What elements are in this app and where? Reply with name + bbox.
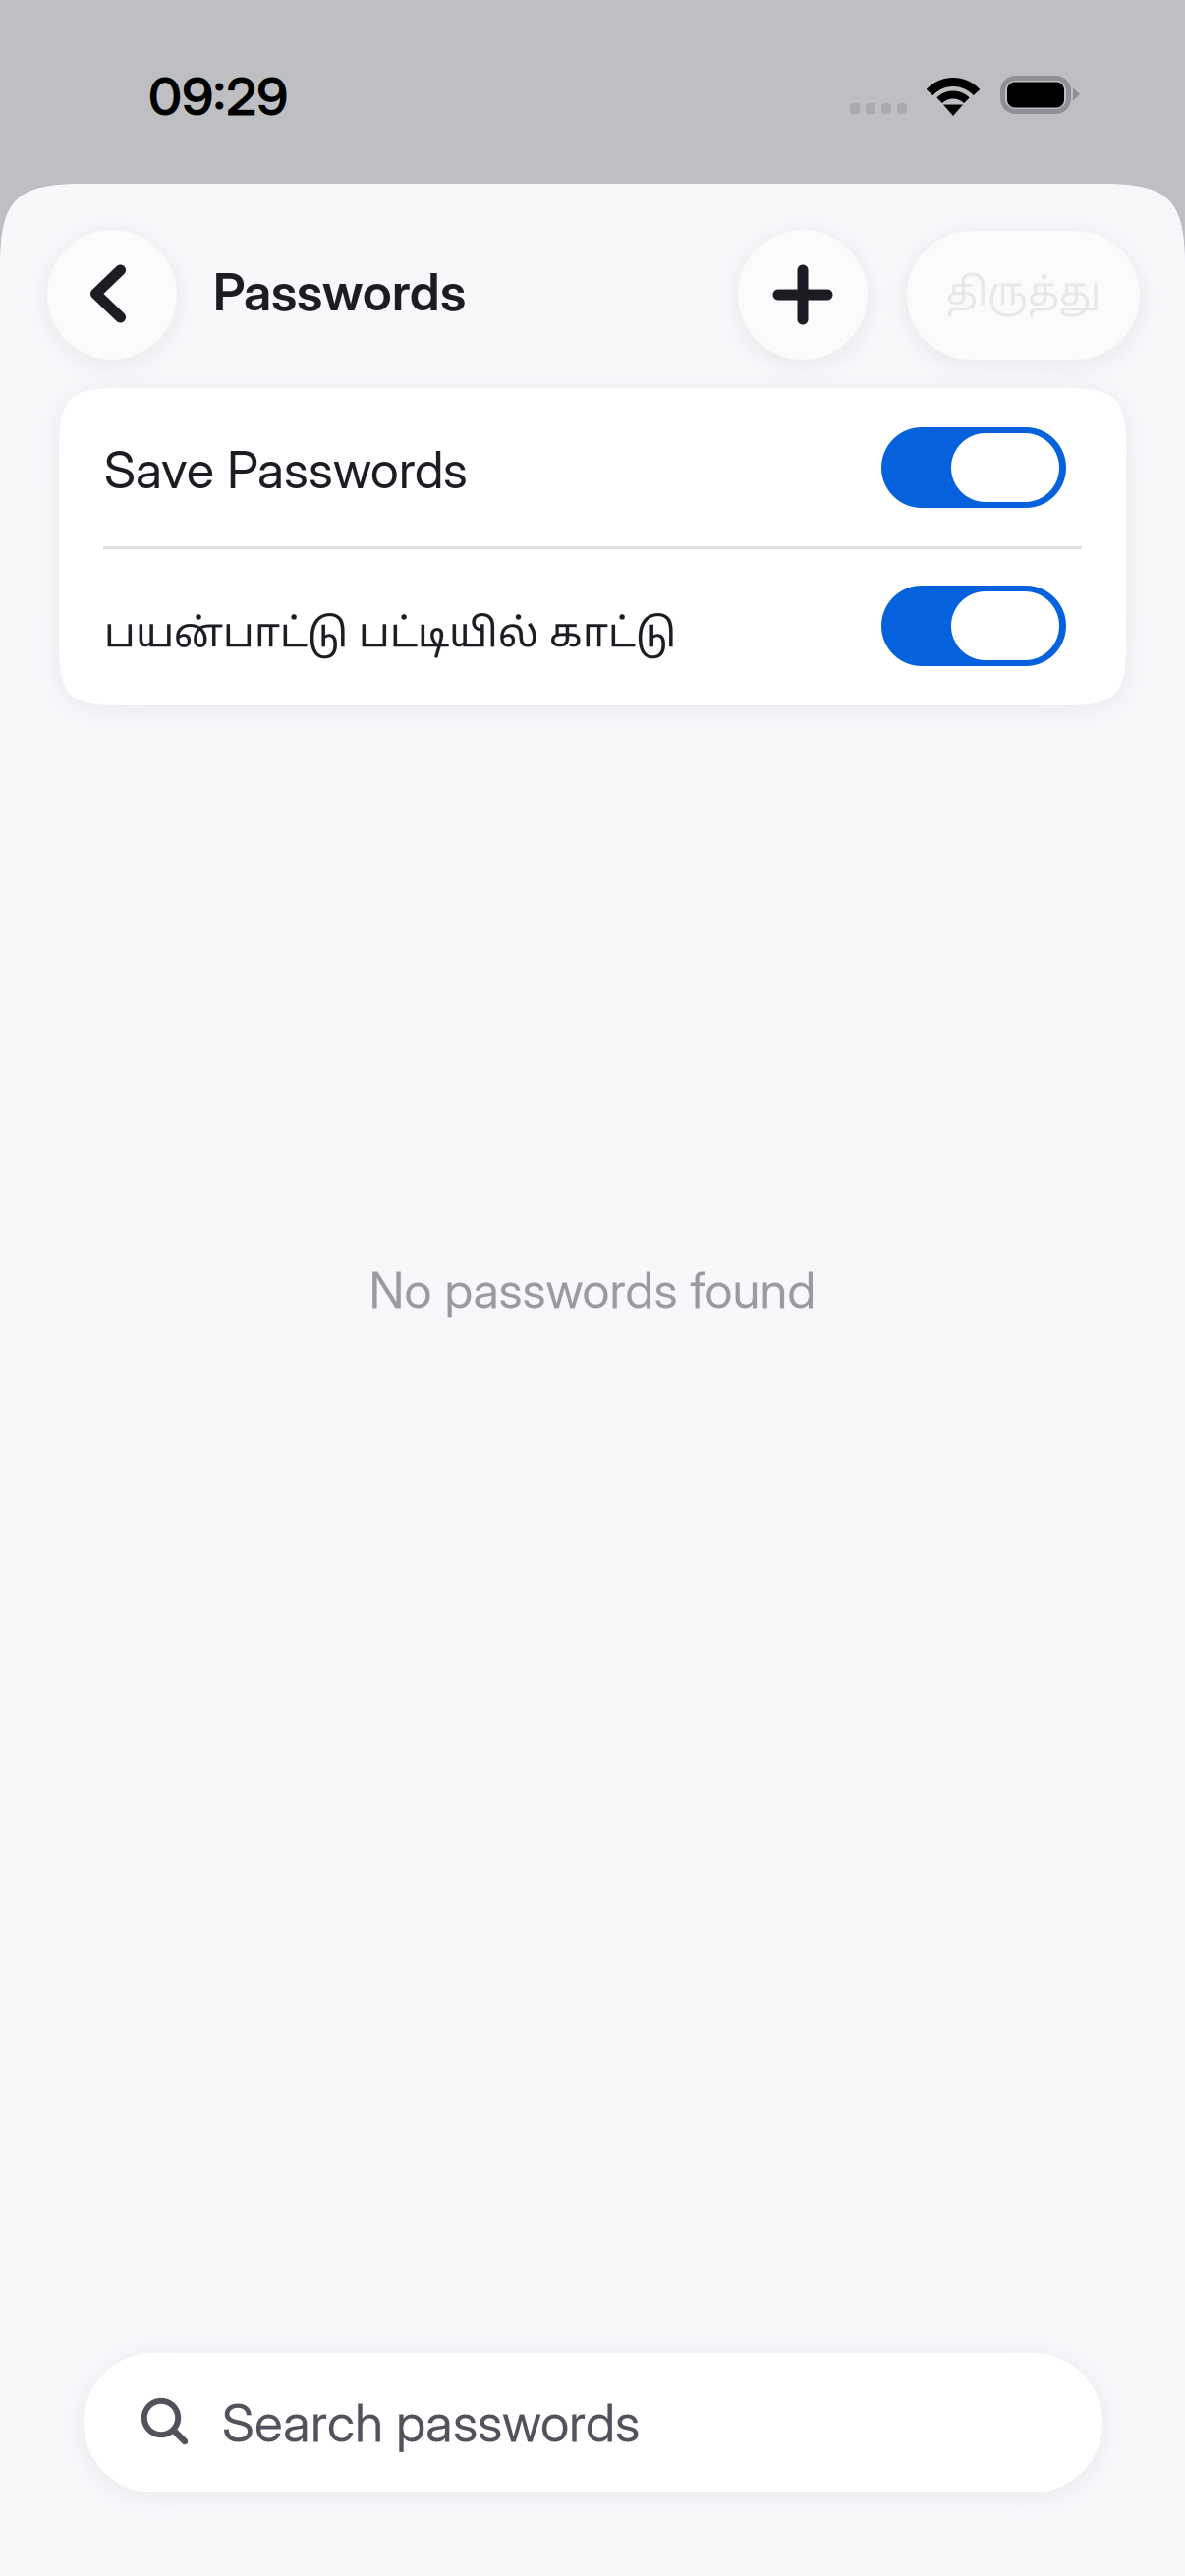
staticText: No passwords found — [369, 1260, 816, 1320]
staticText: Passwords — [213, 261, 466, 323]
staticText: Save Passwords — [104, 439, 468, 500]
button[interactable]: Edit — [907, 231, 1140, 360]
button[interactable]: Back — [47, 230, 177, 360]
staticText: Search passwords — [222, 2391, 640, 2454]
staticText: 09:29 — [148, 65, 288, 128]
staticText: பயன்பாட்டு பட்டியில் காட்டு — [104, 612, 676, 661]
button[interactable]: Search passwords — [84, 2353, 1102, 2492]
staticText: திருத்து — [946, 272, 1100, 319]
button[interactable]: பயன்பாட்டு பட்டியில் காட்டு — [59, 548, 1126, 705]
button[interactable]: Add password — [738, 230, 868, 360]
button[interactable]: Save Passwords — [59, 388, 1126, 548]
